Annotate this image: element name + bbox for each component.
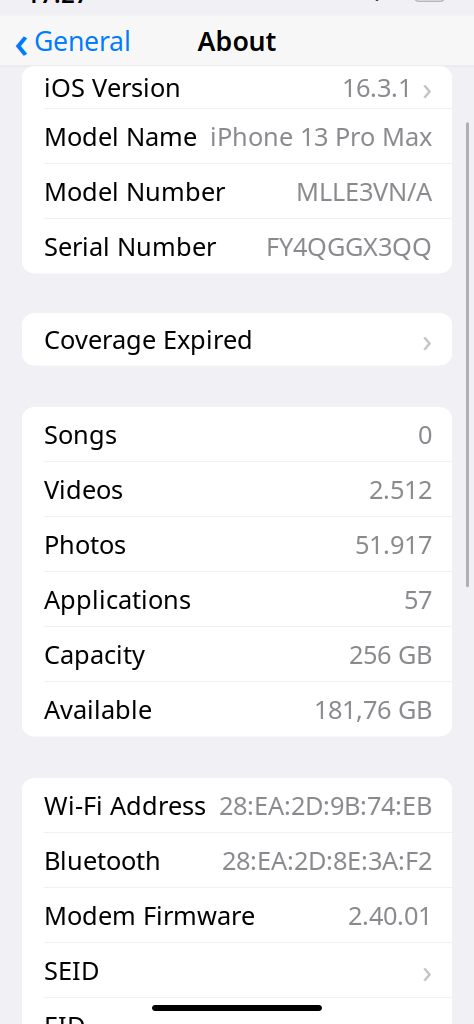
button[interactable]: Photos [22, 517, 452, 571]
staticText: Videos [44, 472, 123, 506]
staticText: About [197, 23, 276, 58]
button[interactable]: Coverage Expired [22, 313, 452, 365]
button[interactable]: EID [22, 998, 452, 1024]
staticText: 28:EA:2D:9B:74:EB [219, 788, 432, 822]
staticText: Model Name [44, 119, 197, 153]
button[interactable]: Videos [22, 462, 452, 516]
button[interactable]: Songs [22, 407, 452, 461]
staticText: Bluetooth [44, 843, 161, 877]
button[interactable]: ‹ [0, 19, 145, 63]
button[interactable]: Serial Number [22, 219, 452, 273]
staticText: General [34, 23, 131, 58]
staticText: 28:EA:2D:8E:3A:F2 [222, 843, 432, 877]
staticText: 256 GB [349, 637, 432, 671]
staticText: › [422, 317, 432, 361]
staticText: Photos [44, 527, 126, 561]
button[interactable]: Model Name [22, 109, 452, 163]
button[interactable]: SEID [22, 943, 452, 997]
button[interactable]: Model Number [22, 164, 452, 218]
staticText: 181,76 GB [314, 692, 432, 726]
button[interactable]: iOS Version [22, 66, 452, 108]
staticText: 2.512 [369, 472, 432, 506]
staticText: 17:27 [26, 0, 89, 10]
staticText: Songs [44, 417, 117, 451]
staticText: Modem Firmware [44, 898, 255, 932]
staticText: Available [44, 692, 152, 726]
staticText: Coverage Expired [44, 322, 253, 356]
staticText: Serial Number [44, 229, 216, 263]
staticText: › [422, 948, 432, 992]
button[interactable]: Modem Firmware [22, 888, 452, 942]
staticText: EID [44, 1008, 85, 1024]
staticText: 51.917 [355, 527, 432, 561]
staticText: 2.40.01 [348, 898, 432, 932]
staticText: SEID [44, 953, 99, 987]
staticText: › [422, 65, 432, 109]
staticText: iPhone 13 Pro Max [210, 119, 432, 153]
staticText: 16.3.1 [342, 70, 412, 104]
staticText: FY4QGGX3QQ [266, 229, 432, 263]
staticText: 0 [418, 417, 432, 451]
staticText: Applications [44, 582, 191, 616]
button[interactable]: Available [22, 682, 452, 736]
button[interactable]: Applications [22, 572, 452, 626]
staticText: ‹ [14, 11, 29, 71]
button[interactable]: Wi-Fi Address [22, 778, 452, 832]
button[interactable]: Capacity [22, 627, 452, 681]
staticText: Capacity [44, 637, 145, 671]
button[interactable]: Bluetooth [22, 833, 452, 887]
staticText: 57 [404, 582, 432, 616]
staticText: Model Number [44, 174, 225, 208]
staticText: Wi-Fi Address [44, 788, 206, 822]
staticText: iOS Version [44, 70, 181, 104]
staticText: MLLE3VN/A [296, 174, 432, 208]
